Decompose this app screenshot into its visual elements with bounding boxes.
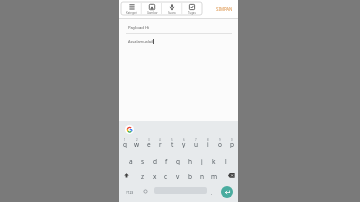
staticText: v [176,172,180,180]
button[interactable]: g [173,157,183,165]
staticText: . [211,190,213,197]
staticText: 7 [195,138,197,142]
staticText: l [225,157,227,165]
button[interactable]: n [197,172,207,180]
button[interactable] [119,19,238,33]
staticText: 3 [148,138,150,142]
staticText: Tugas [188,11,196,15]
staticText: h [188,157,193,165]
staticText: 0 [231,138,233,142]
button[interactable]: t [167,140,177,148]
staticText: 2 [136,138,138,142]
button[interactable]: q [120,140,130,148]
staticText: o [218,140,222,148]
button[interactable]: Suara [162,2,182,15]
button[interactable]: h [185,157,195,165]
button[interactable] [221,186,233,198]
staticText: g [176,157,180,165]
button[interactable]: Tugas [182,2,202,15]
button[interactable]: SIMPAN [212,0,237,17]
staticText: s [141,157,145,165]
button[interactable]: i [203,140,213,148]
button[interactable]: o [215,140,225,148]
button[interactable]: 3 [144,136,154,144]
button[interactable]: w [132,140,142,148]
button[interactable]: 8 [203,136,213,144]
button[interactable]: b [185,172,195,180]
staticText: q [123,140,127,148]
button[interactable]: z [138,172,148,180]
staticText: Gambar [147,11,158,15]
staticText: u [194,140,199,148]
button[interactable]: 6 [179,136,189,144]
staticText: ?123 [126,190,134,195]
button[interactable]: v [173,172,183,180]
staticText: Kategori [126,11,138,15]
staticText: 1 [124,138,126,142]
staticText: 5 [171,138,173,142]
staticText: w [134,140,140,148]
staticText: k [212,157,216,165]
button[interactable]: d [150,157,160,165]
button[interactable]: f [161,157,171,165]
button[interactable]: r [155,140,165,148]
staticText: Payload Hi [128,24,150,30]
button[interactable]: 4 [155,136,165,144]
staticText: f [165,157,168,165]
button[interactable]: l [221,157,231,165]
button[interactable]: 9 [215,136,225,144]
staticText: p [230,140,234,148]
staticText: 6 [183,138,185,142]
button[interactable] [125,125,134,134]
button[interactable]: p [227,140,237,148]
button[interactable] [121,171,131,180]
staticText: m [211,172,218,180]
button[interactable]: . [208,187,216,199]
staticText: y [182,140,186,148]
staticText: b [188,172,192,180]
button[interactable]: 0 [227,136,237,144]
staticText: i [207,140,209,148]
button[interactable]: ?123 [124,186,136,198]
button[interactable]: a [126,157,136,165]
staticText: 4 [159,138,161,142]
staticText: 8 [207,138,209,142]
button[interactable]: k [209,157,219,165]
button[interactable] [119,34,238,120]
staticText: x [153,172,157,180]
button[interactable]: s [138,157,148,165]
staticText: d [153,157,157,165]
button[interactable]: u [191,140,201,148]
staticText: a [129,157,133,165]
staticText: z [141,172,145,180]
button[interactable] [141,185,149,197]
button[interactable]: 5 [167,136,177,144]
button[interactable]: c [161,172,171,180]
button[interactable]: 2 [132,136,142,144]
staticText: j [201,157,203,165]
staticText: c [164,172,168,180]
button[interactable]: m [209,172,219,180]
button[interactable]: e [144,140,154,148]
button[interactable] [226,171,237,180]
button[interactable]: Kategori [121,2,142,15]
button[interactable]: y [179,140,189,148]
staticText: n [200,172,205,180]
button[interactable]: Gambar [142,2,162,15]
staticText: 9 [219,138,221,142]
staticText: Suara [168,11,176,15]
staticText: r [159,140,162,148]
button[interactable]: 7 [191,136,201,144]
button[interactable]: 1 [120,136,130,144]
button[interactable]: j [197,157,207,165]
staticText: SIMPAN [216,6,233,12]
staticText: e [147,140,151,148]
button[interactable]: x [150,172,160,180]
staticText: t [171,140,174,148]
staticText: Assalamualaik [128,39,155,44]
